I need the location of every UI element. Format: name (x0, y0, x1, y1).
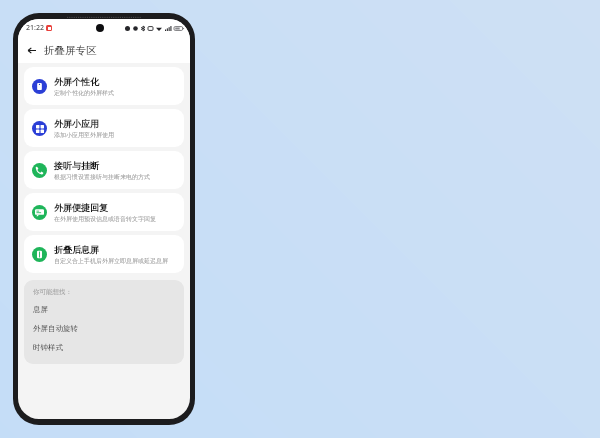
staticText: 自定义合上手机后外屏立即息屏或延迟息屏 (54, 257, 168, 265)
staticText: 21:22 (26, 23, 44, 33)
staticText: 根据习惯设置接听与挂断来电的方式 (54, 173, 150, 181)
button[interactable]: 接听与挂断 (24, 151, 184, 189)
button[interactable]: 外屏个性化 (24, 67, 184, 105)
button[interactable]: 外屏小应用 (24, 109, 184, 147)
button[interactable]: 时钟样式 (33, 342, 175, 352)
staticText: 外屏便捷回复 (54, 202, 108, 213)
staticText: 你可能想找： (33, 288, 72, 296)
staticText: 外屏个性化 (54, 76, 99, 87)
button[interactable]: 返回 (21, 40, 41, 60)
staticText: 添加小应用至外屏使用 (54, 131, 114, 139)
staticText: 折叠屏专区 (44, 44, 97, 57)
button[interactable]: 息屏 (33, 304, 175, 314)
staticText: 时钟样式 (33, 343, 63, 352)
staticText: 息屏 (33, 305, 48, 314)
button[interactable]: 外屏自动旋转 (33, 323, 175, 333)
button[interactable]: 折叠后息屏 (24, 235, 184, 273)
staticText: 外屏小应用 (54, 118, 99, 129)
staticText: 定制个性化的外屏样式 (54, 89, 114, 97)
staticText: 外屏自动旋转 (33, 324, 78, 333)
staticText: 在外屏使用预设信息或语音转文字回复 (54, 215, 156, 223)
button[interactable]: 外屏便捷回复 (24, 193, 184, 231)
staticText: 折叠后息屏 (54, 244, 99, 255)
staticText: 接听与挂断 (54, 160, 99, 171)
